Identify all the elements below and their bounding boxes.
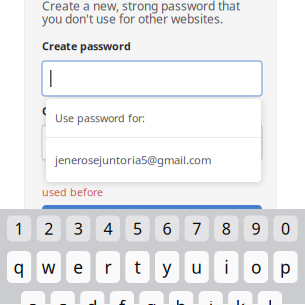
button[interactable]: g xyxy=(139,291,164,305)
staticText: g xyxy=(146,295,157,305)
staticText: 5 xyxy=(133,218,142,239)
staticText: w xyxy=(42,255,56,278)
staticText: s xyxy=(59,295,67,305)
staticText: 2 xyxy=(44,218,53,239)
button[interactable]: 6 xyxy=(155,215,179,241)
staticText: used before xyxy=(42,185,103,199)
button[interactable] xyxy=(42,205,262,223)
staticText: 9 xyxy=(251,218,260,239)
staticText: l xyxy=(268,295,272,305)
staticText: 6 xyxy=(163,218,172,239)
button[interactable]: l xyxy=(258,291,282,305)
staticText: t xyxy=(134,255,140,278)
staticText: p xyxy=(280,255,291,278)
button[interactable]: jenerosejuntoria5@gmail.com xyxy=(46,138,261,182)
staticText: Confirm password xyxy=(42,104,139,118)
staticText: u xyxy=(191,255,202,278)
staticText: d xyxy=(87,295,98,305)
staticText: q xyxy=(14,255,25,278)
staticText: h xyxy=(176,295,187,305)
button[interactable]: w xyxy=(37,251,61,283)
button[interactable]: 1 xyxy=(7,215,31,241)
button[interactable]: 7 xyxy=(185,215,209,241)
button[interactable]: t xyxy=(125,251,150,283)
staticText: you don't use for other websites. xyxy=(42,11,223,27)
staticText: Create a new, strong password that xyxy=(42,0,240,14)
button[interactable]: 4 xyxy=(96,215,120,241)
button[interactable]: h xyxy=(169,291,193,305)
button[interactable]: a xyxy=(21,291,45,305)
staticText: f xyxy=(119,295,125,305)
staticText: jenerosejuntoria5@gmail.com xyxy=(55,152,211,168)
button[interactable]: s xyxy=(51,291,75,305)
button[interactable]: u xyxy=(185,251,209,283)
staticText: i xyxy=(224,255,228,278)
staticText: j xyxy=(209,295,213,305)
button[interactable]: e xyxy=(66,251,90,283)
button[interactable]: k xyxy=(228,291,252,305)
staticText: 8 xyxy=(222,218,231,239)
staticText: Create password xyxy=(42,39,131,53)
button[interactable]: 2 xyxy=(37,215,61,241)
button[interactable]: o xyxy=(244,251,268,283)
button[interactable]: q xyxy=(7,251,31,283)
button[interactable]: j xyxy=(199,291,223,305)
button[interactable]: 5 xyxy=(125,215,150,241)
staticText: e xyxy=(73,255,83,278)
staticText: o xyxy=(251,255,261,278)
button[interactable]: 9 xyxy=(244,215,268,241)
button[interactable]: r xyxy=(96,251,120,283)
button[interactable]: y xyxy=(155,251,179,283)
button[interactable]: 8 xyxy=(214,215,238,241)
staticText: k xyxy=(236,295,245,305)
button[interactable]: i xyxy=(214,251,238,283)
staticText: 7 xyxy=(192,218,201,239)
staticText: y xyxy=(163,255,172,278)
staticText: r xyxy=(104,255,111,278)
staticText: 3 xyxy=(74,218,83,239)
staticText: Use password for: xyxy=(55,111,145,125)
button[interactable]: p xyxy=(273,251,298,283)
staticText: a xyxy=(28,295,38,305)
button[interactable]: 3 xyxy=(66,215,90,241)
button[interactable]: d xyxy=(80,291,104,305)
staticText: 0 xyxy=(281,218,290,239)
button[interactable]: f xyxy=(110,291,134,305)
staticText: 1 xyxy=(15,218,24,239)
button[interactable]: 0 xyxy=(273,215,298,241)
staticText: 4 xyxy=(103,218,112,239)
